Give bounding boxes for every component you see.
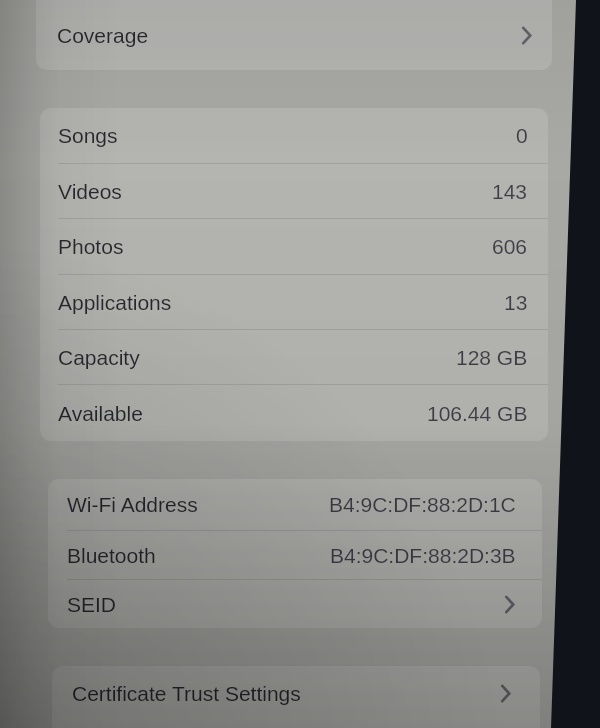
staticText: Certificate Trust Settings	[72, 682, 301, 705]
other: Open SEID	[505, 596, 514, 613]
button[interactable]: Capacity	[40, 330, 548, 384]
other: Open Coverage	[522, 27, 531, 44]
button[interactable]: Coverage	[36, 0, 552, 70]
staticText: Videos	[58, 180, 122, 203]
other: Open Certificate Trust Settings	[501, 685, 510, 702]
staticText: 143	[492, 180, 528, 203]
staticText: 106.44 GB	[427, 402, 528, 425]
button[interactable]: Photos	[40, 219, 548, 274]
button[interactable]: Available	[40, 385, 548, 441]
staticText: Available	[58, 402, 143, 425]
button[interactable]: SEID	[48, 580, 542, 628]
staticText: Songs	[58, 124, 118, 147]
button[interactable]: Wi-Fi Address	[48, 479, 542, 530]
staticText: 13	[504, 291, 528, 314]
staticText: Wi-Fi Address	[67, 493, 198, 516]
button[interactable]: Videos	[40, 164, 548, 218]
staticText: 128 GB	[456, 346, 528, 369]
button[interactable]: Songs	[40, 108, 548, 163]
button[interactable]: Bluetooth	[48, 531, 542, 579]
staticText: 606	[492, 235, 528, 258]
staticText: Capacity	[58, 346, 140, 369]
staticText: Photos	[58, 235, 124, 258]
staticText: Bluetooth	[67, 544, 156, 567]
button[interactable]: Certificate Trust Settings	[52, 666, 540, 720]
staticText: SEID	[67, 593, 117, 616]
staticText: 0	[516, 124, 528, 147]
staticText: Applications	[58, 291, 172, 314]
staticText: B4:9C:DF:88:2D:3B	[330, 544, 516, 567]
button[interactable]: Applications	[40, 275, 548, 329]
staticText: Coverage	[57, 24, 149, 47]
staticText: B4:9C:DF:88:2D:1C	[329, 493, 516, 516]
